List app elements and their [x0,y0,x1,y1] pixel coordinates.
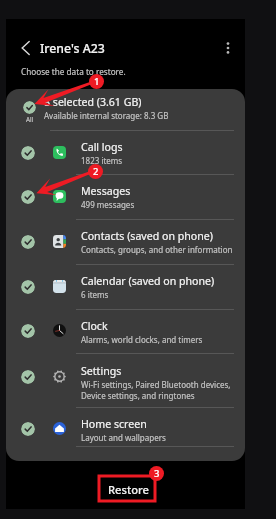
staticText: Available internal storage: 8.3 GB [44,110,169,121]
staticText: All [26,115,34,124]
button[interactable]: Selected [6,310,245,354]
button[interactable]: Selected [6,354,245,408]
staticText: Calendar (saved on phone) [81,274,215,288]
staticText: Contacts (saved on phone) [81,229,213,243]
button[interactable]: Selected [6,408,245,447]
staticText: Wi-Fi settings, Paired Bluetooth devices… [81,379,231,390]
staticText: Call logs [81,140,123,154]
staticText: 1 [94,75,100,88]
staticText: Layout and wallpapers [81,432,166,443]
staticText: 499 messages [81,199,135,210]
button[interactable]: Selected [6,131,245,175]
button[interactable]: Selected [21,324,35,338]
staticText: Messages [81,184,131,198]
button[interactable]: Selected [21,422,35,436]
button[interactable]: Selected [21,146,35,160]
staticText: 3 [154,467,160,480]
staticText: Home screen [81,417,147,431]
staticText: Alarms, world clocks, and timers [81,334,203,345]
button[interactable]: Selected [21,370,35,384]
button[interactable]: Selected [6,265,245,310]
button[interactable]: More options [218,38,238,58]
button[interactable]: Selected [6,175,245,220]
button[interactable]: Selected [23,101,36,114]
staticText: 6 items [81,289,109,300]
staticText: Settings [81,364,122,378]
staticText: 1823 items [81,155,123,166]
button[interactable]: Back [16,38,36,58]
button[interactable]: Selected [21,280,35,294]
staticText: Clock [81,319,108,333]
staticText: Irene's A23 [40,40,105,57]
staticText: Contacts, groups, and other information [81,244,233,255]
staticText: Restore [108,482,149,497]
staticText: Device settings, and ringtones [81,390,195,401]
button[interactable]: Selected [6,220,245,265]
button[interactable]: Restore [100,477,156,501]
staticText: 2 [93,165,99,178]
staticText: Choose the data to restore. [21,66,126,77]
button[interactable]: Selected [21,190,35,204]
staticText: 8 selected (3.61 GB) [44,95,142,109]
button[interactable]: Selected [21,235,35,249]
button[interactable]: Selected [6,89,245,131]
